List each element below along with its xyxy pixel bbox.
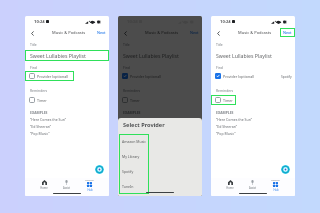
button[interactable]: Timer	[29, 97, 48, 103]
staticText: Hub	[273, 188, 279, 191]
staticText: EXAMPLES	[123, 110, 141, 115]
staticText: Next	[283, 30, 292, 35]
staticText: Find	[216, 65, 223, 70]
staticText: Home	[40, 186, 48, 190]
button[interactable]: Assistant	[95, 165, 104, 174]
staticText: Music & Podcasts	[238, 30, 272, 35]
staticText: Music & Podcasts	[145, 30, 179, 35]
staticText: 10:24	[220, 19, 231, 25]
button[interactable]: Sweet Lullabies Playlist	[211, 50, 295, 61]
button[interactable]: Home	[33, 178, 55, 191]
staticText: Spotify	[281, 74, 292, 78]
staticText: Home	[133, 186, 141, 190]
button[interactable]: Assist	[241, 178, 264, 191]
button[interactable]: Back	[214, 29, 222, 37]
staticText: EXAMPLES	[216, 110, 234, 115]
staticText: Sweet Lullabies Playlist	[123, 52, 179, 59]
staticText: Title	[30, 42, 37, 47]
staticText: “Pop Music”	[216, 131, 236, 136]
staticText: Assist	[63, 186, 70, 190]
staticText: Amazon Music	[122, 139, 146, 144]
staticText: “Here Comes the Sun”	[30, 117, 67, 122]
button[interactable]: Back	[28, 29, 36, 37]
button[interactable]: Amazon Music	[119, 134, 149, 149]
button[interactable]: Timer	[215, 97, 234, 103]
staticText: “Ed Sheeran”	[216, 124, 238, 129]
button[interactable]: Next	[190, 30, 199, 35]
staticText: “Pop Music”	[30, 131, 50, 136]
staticText: EXAMPLES	[30, 110, 48, 115]
staticText: Timer	[130, 98, 140, 103]
button[interactable]: Sweet Lullabies Playlist	[25, 50, 109, 61]
button[interactable]: Assist	[55, 178, 78, 191]
staticText: TuneIn	[122, 184, 134, 189]
staticText: Find	[30, 65, 37, 70]
staticText: Hub	[87, 188, 93, 191]
button[interactable]: Devices	[264, 178, 287, 191]
button[interactable]: TuneIn	[119, 179, 149, 194]
button[interactable]: Next	[283, 30, 292, 35]
staticText: Next	[97, 30, 106, 35]
button[interactable]: Back	[121, 29, 129, 37]
staticText: Sweet Lullabies Playlist	[216, 52, 272, 59]
button[interactable]: Provider (optional)	[215, 73, 258, 79]
button[interactable]: Spotify	[119, 164, 149, 179]
staticText: Reminders	[30, 88, 48, 93]
button[interactable]: Home	[126, 178, 148, 191]
staticText: Provider (optional)	[130, 74, 162, 79]
staticText: “Ed Sheeran”	[123, 124, 145, 129]
staticText: Title	[216, 42, 223, 47]
staticText: Reminders	[216, 88, 234, 93]
button[interactable]: Provider (optional)	[29, 73, 72, 79]
button[interactable]: My Library	[119, 149, 149, 164]
staticText: “Ed Sheeran”	[30, 124, 52, 129]
button[interactable]: Provider (optional)	[122, 73, 165, 79]
staticText: Devices	[271, 178, 280, 181]
staticText: Spotify	[122, 169, 134, 174]
button[interactable]: Assistant	[281, 165, 290, 174]
staticText: “Pop Music”	[123, 131, 143, 136]
staticText: Provider (optional)	[223, 74, 255, 79]
staticText: Find	[123, 65, 130, 70]
staticText: Provider (optional)	[37, 74, 69, 79]
staticText: Title	[123, 42, 130, 47]
button[interactable]: Timer	[122, 97, 141, 103]
button[interactable]: Next	[97, 30, 106, 35]
staticText: 10:24	[127, 19, 138, 25]
staticText: My Library	[122, 154, 140, 159]
staticText: Assist	[249, 186, 256, 190]
staticText: “Here Comes the Sun”	[123, 117, 160, 122]
staticText: Next	[190, 30, 199, 35]
staticText: Timer	[37, 98, 47, 103]
button[interactable]: Devices	[78, 178, 101, 191]
staticText: 10:24	[34, 19, 45, 25]
staticText: Sweet Lullabies Playlist	[30, 52, 86, 59]
staticText: Reminders	[123, 88, 141, 93]
staticText: Timer	[223, 98, 233, 103]
staticText: Devices	[85, 178, 94, 181]
staticText: Music & Podcasts	[52, 30, 86, 35]
staticText: “Here Comes the Sun”	[216, 117, 253, 122]
button[interactable]: Assist	[148, 178, 171, 191]
staticText: Select Provider	[123, 121, 165, 129]
button[interactable]: Home	[219, 178, 241, 191]
button[interactable]: Sweet Lullabies Playlist	[118, 50, 202, 61]
staticText: Home	[226, 186, 234, 190]
